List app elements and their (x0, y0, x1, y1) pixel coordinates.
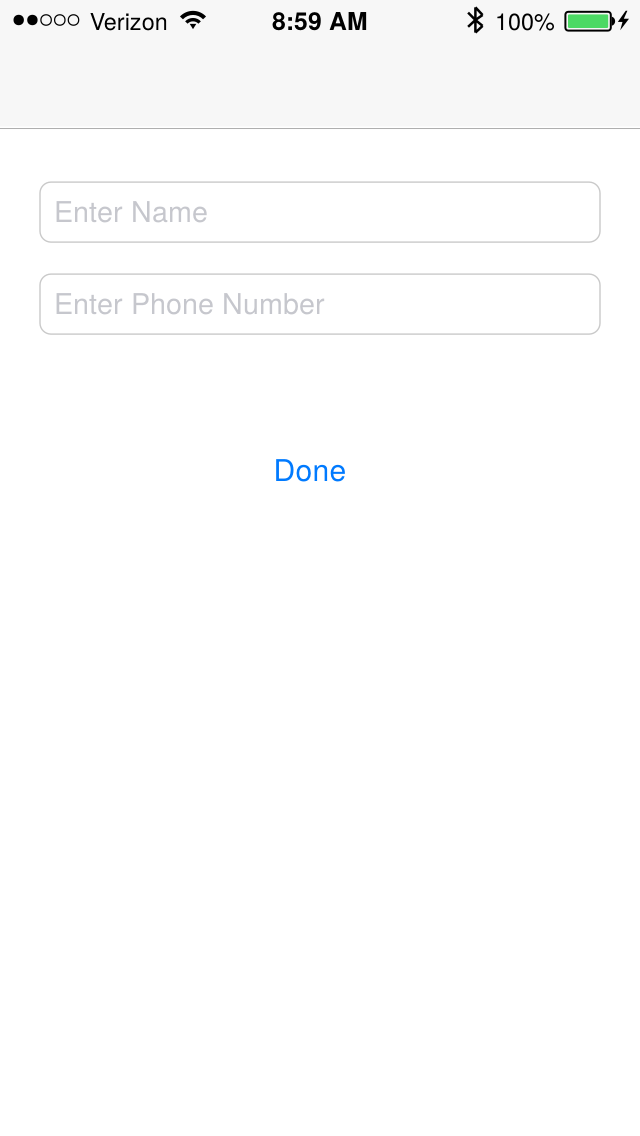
staticText: 8:59 AM (272, 2, 368, 38)
button[interactable]: Enter Phone Number (40, 274, 600, 334)
button[interactable]: Enter Name (40, 182, 600, 242)
staticText: Done (273, 447, 346, 490)
staticText: Enter Phone Number (54, 281, 325, 322)
button[interactable]: Done (40, 449, 580, 487)
staticText: Verizon (90, 3, 168, 37)
staticText: 100% (495, 3, 555, 37)
staticText: Enter Name (54, 189, 208, 230)
